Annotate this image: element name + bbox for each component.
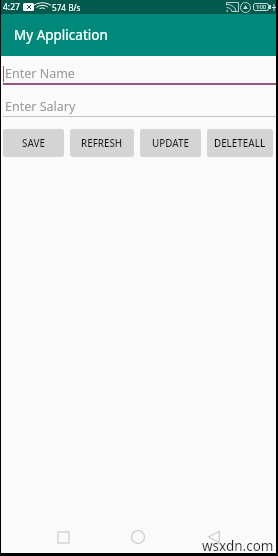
button[interactable]: Back (199, 522, 229, 552)
staticText: Enter Salary (5, 98, 76, 115)
staticText: 574 B/s (52, 2, 81, 13)
staticText: Enter Name (5, 65, 75, 82)
staticText: wsxdn.com (202, 537, 274, 555)
staticText: UPDATE (152, 137, 189, 150)
staticText: My Application (14, 26, 108, 44)
staticText: 4:27 (3, 1, 20, 13)
button[interactable]: Enter Name (1, 56, 276, 85)
staticText: REFRESH (81, 137, 123, 150)
button[interactable]: UPDATE (140, 129, 201, 157)
button[interactable]: Recents (48, 522, 78, 552)
staticText: SAVE (22, 137, 45, 150)
button[interactable]: Enter Salary (1, 85, 276, 118)
button[interactable]: Home (123, 522, 153, 552)
button[interactable]: DELETEALL (207, 129, 273, 157)
staticText: DELETEALL (214, 137, 266, 150)
button[interactable]: REFRESH (70, 129, 134, 157)
button[interactable]: SAVE (3, 129, 64, 157)
staticText: 100 (256, 3, 267, 11)
